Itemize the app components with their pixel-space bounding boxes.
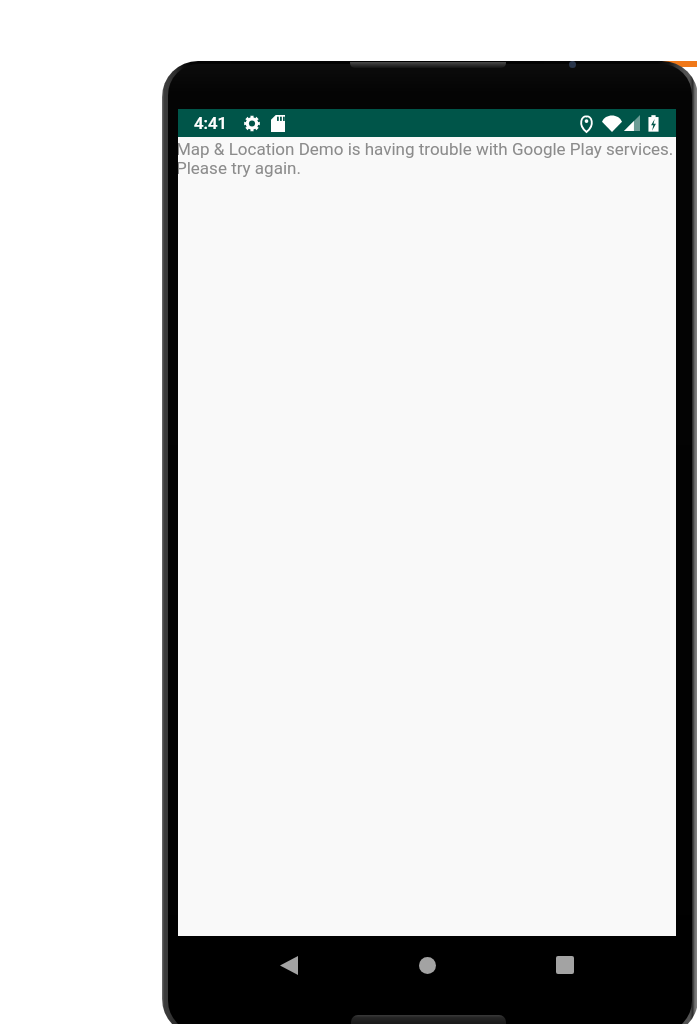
button[interactable]: Home bbox=[358, 936, 496, 994]
button[interactable]: Back bbox=[220, 936, 358, 994]
staticText: 4:41 bbox=[194, 113, 228, 133]
button[interactable]: Recent apps bbox=[496, 936, 634, 994]
staticText: Map & Location Demo is having trouble wi… bbox=[178, 139, 676, 179]
